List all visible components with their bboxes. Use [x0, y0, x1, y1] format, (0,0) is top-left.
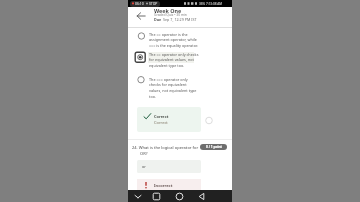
button[interactable]: 0 / 1 point: [200, 144, 227, 150]
button[interactable]: [135, 10, 147, 22]
button[interactable]: or: [137, 160, 201, 173]
staticText: Graded Quiz • 30 min: [154, 12, 187, 16]
button[interactable]: [174, 192, 185, 201]
button[interactable]: The == operator is the assignment operat…: [134, 31, 228, 50]
staticText: STOP: [149, 1, 158, 6]
staticText: Correct: [154, 120, 168, 125]
staticText: 0 / 1 point: [206, 145, 222, 149]
staticText: Due: [154, 17, 163, 22]
button[interactable]: The == operator only checks for equivale…: [134, 51, 228, 70]
staticText: Week One: [154, 7, 182, 14]
staticText: Correct: [154, 114, 169, 119]
staticText: The === operator only checks for equival…: [149, 77, 197, 99]
button[interactable]: [151, 192, 162, 201]
staticText: 24. What is the logical operator for: [132, 145, 199, 150]
staticText: 36% 7:13:08 AM: [199, 2, 223, 6]
button[interactable]: [133, 192, 143, 201]
staticText: Incorrect: [154, 183, 173, 188]
button[interactable]: The === operator only checks for equival…: [134, 75, 228, 99]
staticText: Sep 7, 12:29 PM IST: [163, 17, 197, 22]
staticText: The == operator is the assignment operat…: [149, 32, 198, 48]
button[interactable]: [196, 192, 207, 201]
staticText: 06:10: [135, 1, 144, 6]
staticText: OR?: [140, 151, 148, 156]
staticText: or: [142, 164, 146, 169]
staticText: The == operator only checks for equivale…: [149, 52, 199, 68]
